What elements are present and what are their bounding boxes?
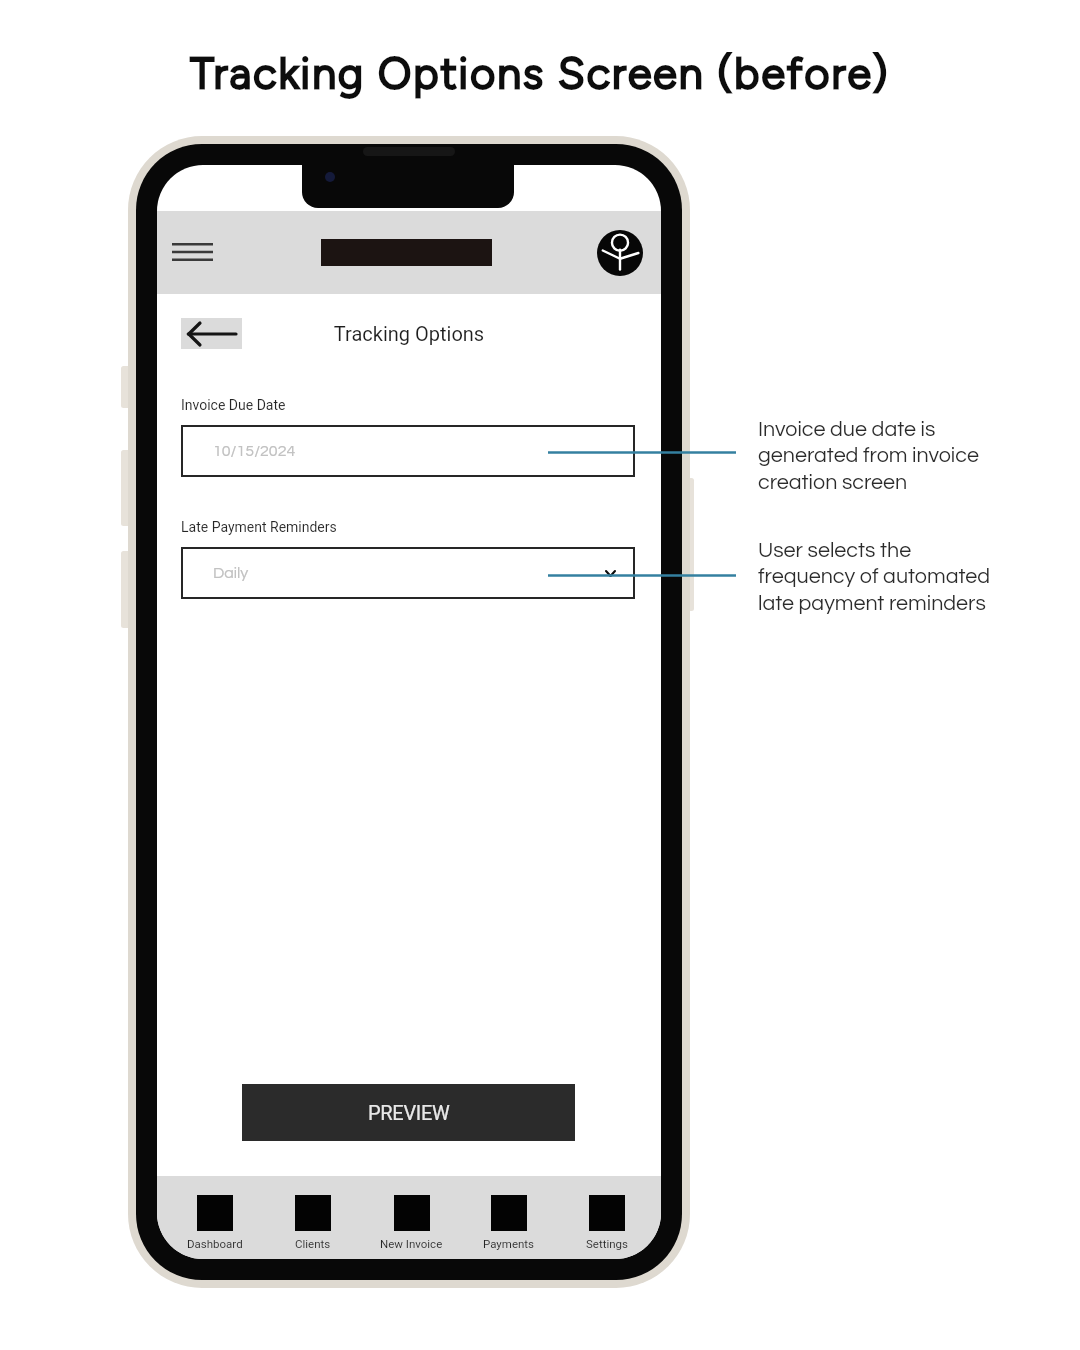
staticText: Dashboard [187, 1237, 243, 1250]
button[interactable]: PREVIEW [242, 1084, 575, 1141]
button[interactable]: Clients [264, 1176, 362, 1259]
staticText: Tracking Options Screen (before) [0, 47, 1080, 99]
staticText: User selects the frequency of automated … [758, 539, 990, 615]
button[interactable]: Account [597, 230, 643, 276]
staticText: New Invoice [380, 1237, 443, 1250]
staticText: PREVIEW [368, 1101, 450, 1124]
button[interactable]: Daily [181, 547, 635, 599]
staticText: Payments [483, 1237, 535, 1250]
button[interactable]: Menu [160, 221, 224, 283]
button[interactable]: Payments [460, 1176, 558, 1259]
button[interactable]: Dashboard [166, 1176, 264, 1259]
staticText: Clients [295, 1237, 331, 1250]
staticText: Tracking Options Screen (before) [0, 47, 1080, 99]
button[interactable]: Settings [558, 1176, 656, 1259]
button[interactable]: 10/15/2024 [181, 425, 635, 477]
staticText: Invoice Due Date [181, 397, 286, 413]
button[interactable]: Back [181, 318, 242, 349]
staticText: Daily [213, 565, 249, 581]
button[interactable]: New Invoice [362, 1176, 460, 1259]
staticText: 10/15/2024 [213, 443, 296, 459]
staticText: Settings [586, 1237, 628, 1250]
staticText: Late Payment Reminders [181, 519, 337, 535]
staticText: Tracking Options [157, 322, 661, 345]
staticText: Invoice due date is generated from invoi… [758, 418, 979, 494]
